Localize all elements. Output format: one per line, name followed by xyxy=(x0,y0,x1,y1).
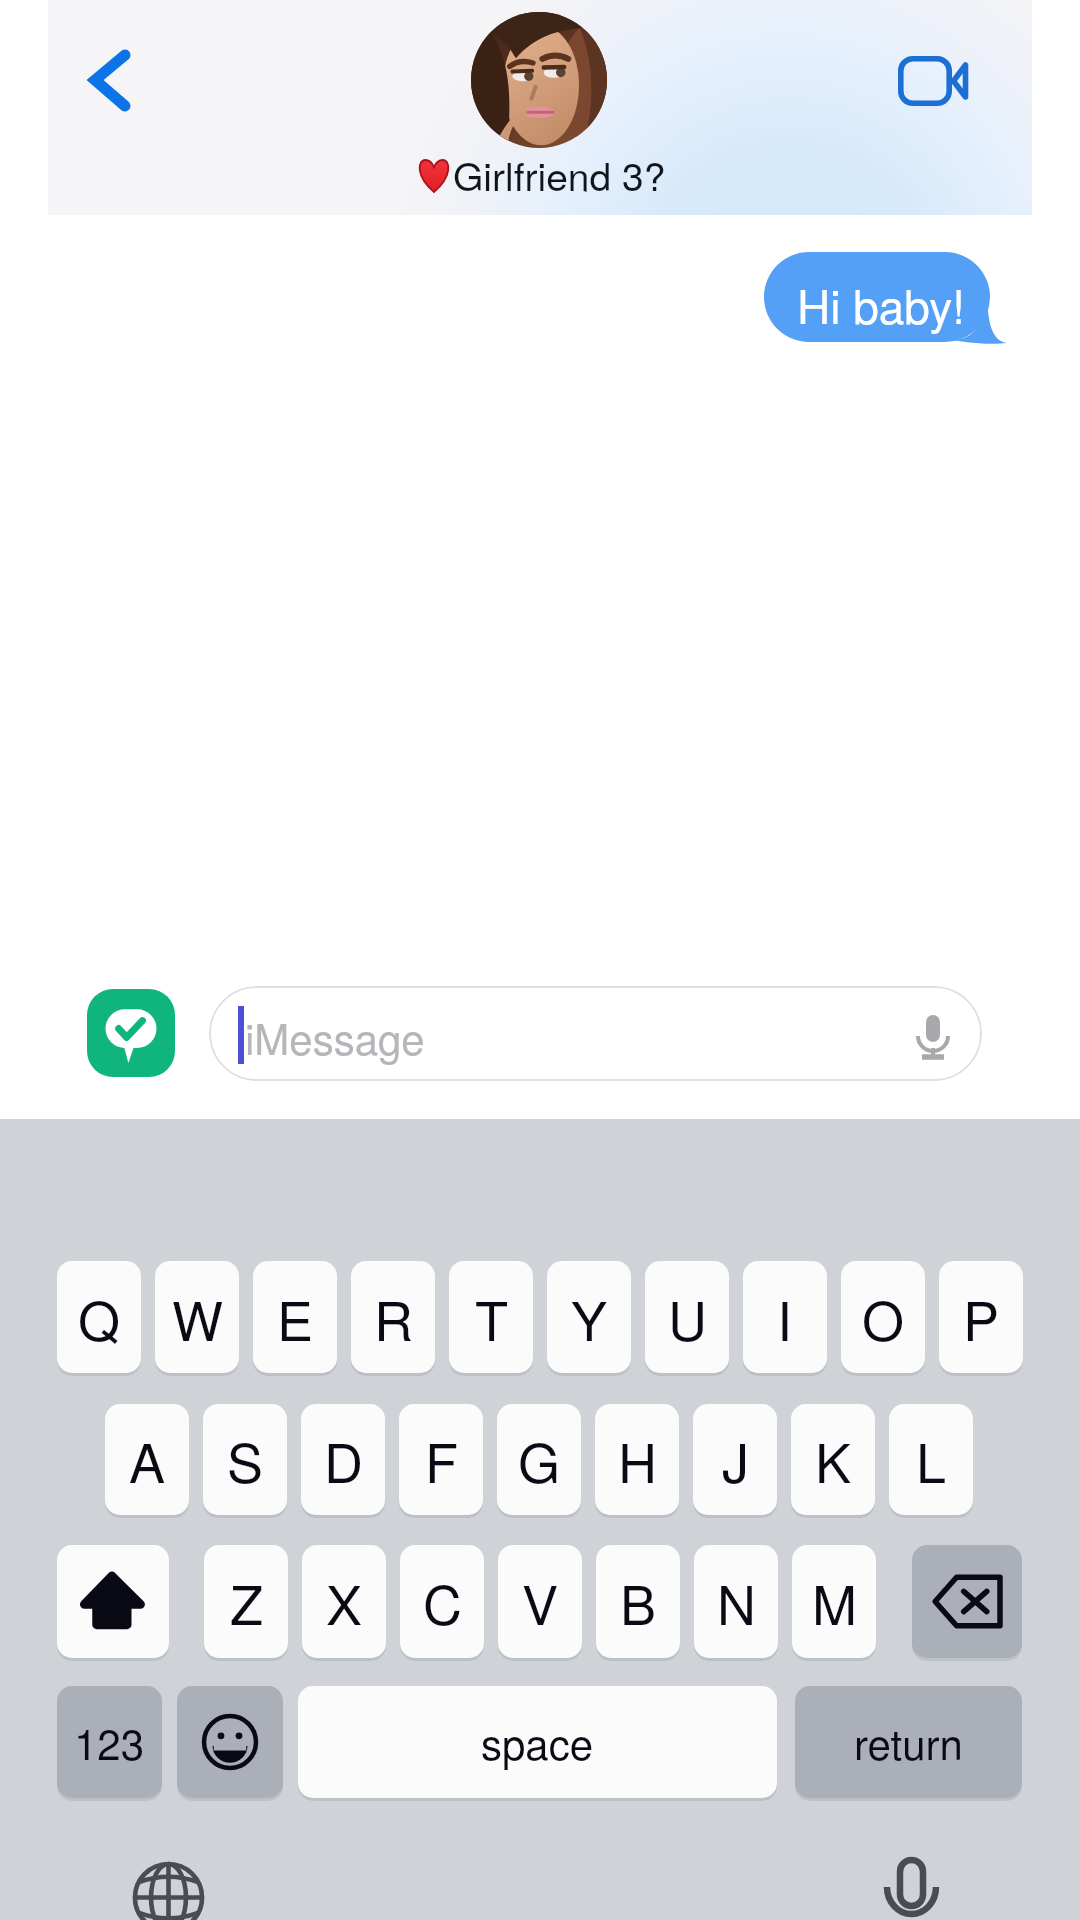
button[interactable]: return xyxy=(795,1686,1022,1798)
button[interactable]: Backspace xyxy=(912,1545,1022,1658)
staticText: Girlfriend 3? xyxy=(453,146,666,202)
button[interactable]: B xyxy=(596,1545,680,1658)
staticText: U xyxy=(668,1279,707,1356)
staticText: E xyxy=(277,1279,314,1356)
button[interactable]: Numbers and symbols xyxy=(57,1686,162,1798)
button[interactable]: G xyxy=(497,1404,581,1515)
button[interactable]: K xyxy=(791,1404,875,1515)
button[interactable]: Dictate xyxy=(880,1850,940,1920)
staticText: space xyxy=(481,1712,594,1772)
staticText: G xyxy=(518,1421,561,1498)
staticText: Y xyxy=(571,1279,608,1356)
button[interactable]: space xyxy=(298,1686,777,1798)
staticText: Hi baby! xyxy=(797,271,966,337)
button[interactable]: X xyxy=(302,1545,386,1658)
button[interactable]: J xyxy=(693,1404,777,1515)
staticText: X xyxy=(326,1563,363,1640)
button[interactable]: FaceTime video call xyxy=(880,40,990,120)
staticText: I xyxy=(777,1279,793,1356)
button[interactable]: T xyxy=(449,1261,533,1373)
button[interactable]: Shift xyxy=(57,1545,169,1658)
button[interactable]: H xyxy=(595,1404,679,1515)
staticText: H xyxy=(618,1421,657,1498)
button[interactable]: Q xyxy=(57,1261,141,1373)
button[interactable]: P xyxy=(939,1261,1023,1373)
staticText: N xyxy=(717,1563,756,1640)
button[interactable]: Contact photo xyxy=(471,12,607,148)
button[interactable]: Girlfriend 3? xyxy=(0,145,1080,203)
button[interactable]: S xyxy=(203,1404,287,1515)
staticText: V xyxy=(522,1563,559,1640)
staticText: M xyxy=(812,1563,857,1640)
button[interactable]: N xyxy=(694,1545,778,1658)
staticText: F xyxy=(425,1421,458,1498)
staticText: K xyxy=(815,1421,852,1498)
staticText: Q xyxy=(78,1279,121,1356)
staticText: L xyxy=(916,1421,947,1498)
staticText: S xyxy=(227,1421,264,1498)
button[interactable]: V xyxy=(498,1545,582,1658)
button[interactable]: U xyxy=(645,1261,729,1373)
staticText: B xyxy=(620,1563,657,1640)
button[interactable]: iMessage xyxy=(209,986,982,1081)
button[interactable]: E xyxy=(253,1261,337,1373)
staticText: W xyxy=(172,1279,223,1356)
button[interactable]: Dictate xyxy=(909,1001,959,1071)
button[interactable]: M xyxy=(792,1545,876,1658)
button[interactable]: L xyxy=(889,1404,973,1515)
staticText: P xyxy=(963,1279,1000,1356)
button[interactable]: Z xyxy=(204,1545,288,1658)
button[interactable]: Back xyxy=(62,34,144,126)
button[interactable]: Change keyboard language xyxy=(126,1855,211,1920)
button[interactable]: R xyxy=(351,1261,435,1373)
staticText: D xyxy=(324,1421,363,1498)
button[interactable]: D xyxy=(301,1404,385,1515)
staticText: return xyxy=(854,1712,963,1772)
button[interactable]: W xyxy=(155,1261,239,1373)
button[interactable]: Y xyxy=(547,1261,631,1373)
staticText: 123 xyxy=(74,1712,145,1772)
button[interactable]: Apps xyxy=(87,989,175,1077)
button[interactable]: C xyxy=(400,1545,484,1658)
staticText: O xyxy=(862,1279,905,1356)
button[interactable]: Emoji xyxy=(177,1686,283,1798)
button[interactable]: O xyxy=(841,1261,925,1373)
staticText: T xyxy=(475,1279,508,1356)
button[interactable]: A xyxy=(105,1404,189,1515)
staticText: Z xyxy=(230,1563,263,1640)
staticText: J xyxy=(722,1421,749,1498)
staticText: iMessage xyxy=(245,1007,425,1067)
staticText: A xyxy=(129,1421,166,1498)
staticText: C xyxy=(423,1563,462,1640)
button[interactable]: I xyxy=(743,1261,827,1373)
staticText: R xyxy=(374,1279,413,1356)
button[interactable]: F xyxy=(399,1404,483,1515)
